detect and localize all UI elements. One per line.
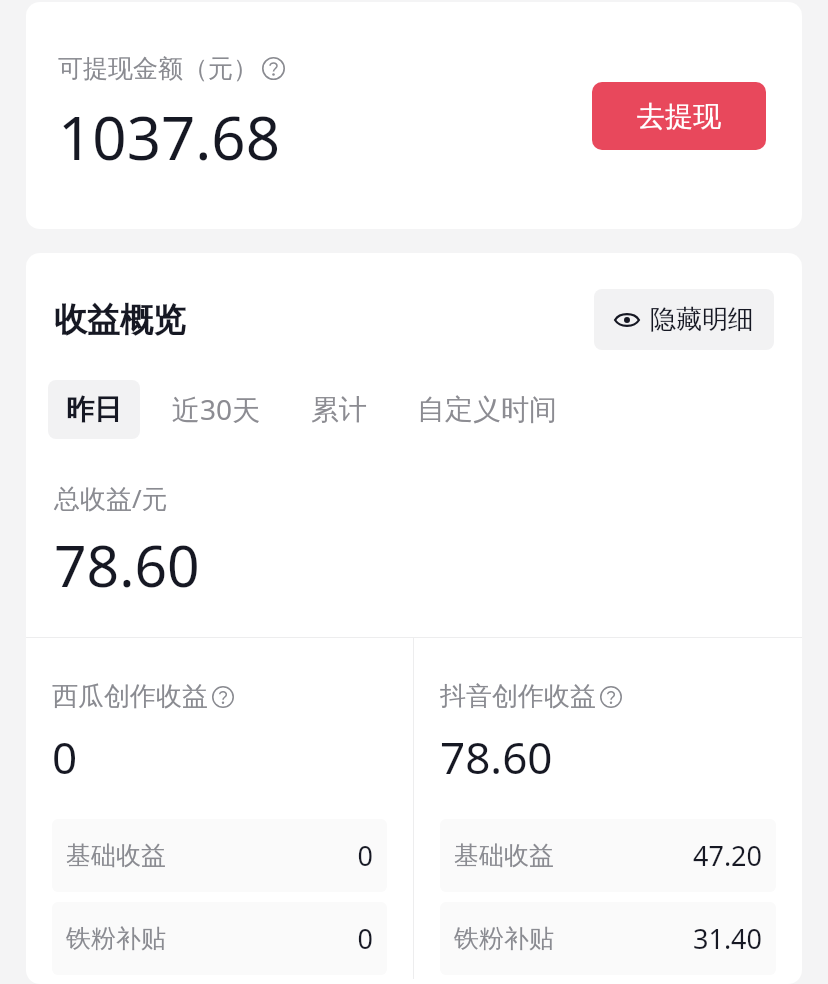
staticText: 0 <box>357 920 373 957</box>
staticText: 铁粉补贴 <box>454 923 554 954</box>
button[interactable]: 抖音创作收益 <box>414 638 802 984</box>
staticText: 基础收益 <box>454 840 554 871</box>
staticText: 铁粉补贴 <box>66 923 166 954</box>
staticText: 可提现金额（元） <box>58 53 258 84</box>
staticText: 78.60 <box>54 526 200 604</box>
staticText: 近30天 <box>172 390 261 428</box>
staticText: 基础收益 <box>66 840 166 871</box>
staticText: 收益概览 <box>54 299 186 341</box>
staticText: 抖音创作收益 <box>440 680 596 713</box>
other: 帮助说明 <box>600 686 622 708</box>
staticText: 累计 <box>311 392 367 427</box>
button[interactable]: 西瓜创作收益 <box>26 638 413 984</box>
button[interactable]: 隐藏明细 <box>594 289 774 350</box>
staticText: 31.40 <box>692 920 762 957</box>
other: 隐藏明细 <box>614 307 640 333</box>
button[interactable]: 自定义时间 <box>399 380 575 439</box>
staticText: 西瓜创作收益 <box>52 680 208 713</box>
staticText: 总收益/元 <box>54 480 168 516</box>
button[interactable]: 累计 <box>293 380 385 439</box>
staticText: 78.60 <box>440 727 553 787</box>
button[interactable]: 近30天 <box>154 378 279 440</box>
staticText: 0 <box>52 727 78 787</box>
staticText: 47.20 <box>692 837 762 874</box>
staticText: 隐藏明细 <box>650 303 754 336</box>
staticText: 昨日 <box>66 392 122 427</box>
button[interactable]: 去提现 <box>592 82 766 150</box>
other: 帮助说明 <box>262 57 285 80</box>
staticText: 去提现 <box>637 99 721 134</box>
staticText: 自定义时间 <box>417 392 557 427</box>
staticText: 1037.68 <box>58 96 280 178</box>
other: 帮助说明 <box>212 686 234 708</box>
staticText: 0 <box>357 837 373 874</box>
button[interactable]: 昨日 <box>48 380 140 439</box>
